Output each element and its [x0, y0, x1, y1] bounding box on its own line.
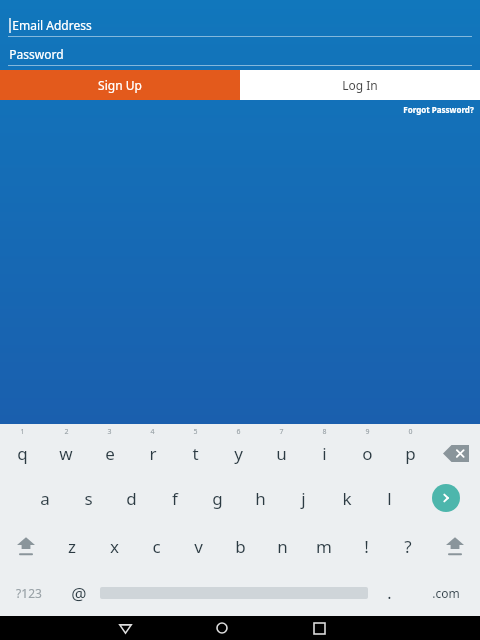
staticText: 1 — [20, 427, 25, 437]
staticText: ?123 — [16, 585, 42, 601]
staticText: u — [276, 442, 287, 465]
button[interactable]: 0 — [389, 424, 432, 474]
staticText: m — [316, 535, 332, 558]
staticText: i — [322, 442, 327, 465]
staticText: Log In — [342, 77, 378, 93]
button[interactable]: .com — [411, 570, 480, 616]
staticText: 4 — [150, 427, 155, 437]
staticText: p — [405, 442, 416, 465]
button[interactable]: f — [153, 474, 196, 522]
staticText: r — [149, 442, 157, 465]
staticText: Email Address — [12, 17, 92, 33]
staticText: 9 — [365, 427, 370, 437]
button[interactable]: 1 — [0, 424, 44, 474]
staticText: d — [126, 487, 137, 510]
button[interactable]: 2 — [44, 424, 88, 474]
button[interactable]: v — [177, 522, 219, 570]
staticText: g — [212, 487, 223, 510]
staticText: 8 — [322, 427, 327, 437]
button[interactable]: Password — [0, 43, 480, 66]
button[interactable]: c — [135, 522, 177, 570]
button[interactable]: Email Address — [0, 14, 480, 37]
button[interactable]: ?123 — [0, 570, 57, 616]
staticText: c — [152, 535, 161, 558]
button[interactable]: 7 — [260, 424, 303, 474]
button[interactable]: Forgot Password? — [0, 104, 480, 115]
button[interactable]: j — [282, 474, 325, 522]
staticText: w — [59, 442, 73, 465]
button[interactable]: Shift — [429, 522, 480, 570]
button[interactable]: m — [303, 522, 345, 570]
staticText: t — [192, 442, 199, 465]
button[interactable]: Next — [411, 474, 480, 522]
button[interactable]: Shift — [0, 522, 51, 570]
button[interactable]: h — [239, 474, 282, 522]
staticText: a — [40, 487, 50, 510]
staticText: ? — [404, 535, 412, 558]
button[interactable]: @ — [57, 570, 100, 616]
staticText: . — [387, 582, 392, 604]
button[interactable]: n — [261, 522, 303, 570]
staticText: @ — [71, 582, 87, 605]
button[interactable]: Log In — [240, 70, 480, 100]
staticText: o — [362, 442, 373, 465]
button[interactable]: ! — [345, 522, 387, 570]
button[interactable]: 3 — [88, 424, 131, 474]
staticText: y — [234, 442, 243, 465]
button[interactable]: Backspace — [432, 424, 480, 474]
button[interactable]: Space — [100, 570, 368, 616]
staticText: h — [255, 487, 266, 510]
button[interactable]: Home — [202, 616, 242, 640]
button[interactable]: s — [67, 474, 110, 522]
staticText: Sign Up — [98, 77, 142, 93]
staticText: k — [342, 487, 352, 510]
button[interactable]: Back — [105, 616, 145, 640]
staticText: 7 — [279, 427, 284, 437]
button[interactable]: 6 — [217, 424, 260, 474]
button[interactable]: Recent apps — [299, 616, 339, 640]
button[interactable]: b — [219, 522, 261, 570]
staticText: 0 — [408, 427, 413, 437]
staticText: Password — [9, 46, 64, 62]
staticText: x — [110, 535, 119, 558]
staticText: Forgot Password? — [403, 104, 474, 115]
staticText: s — [84, 487, 93, 510]
staticText: q — [17, 442, 28, 465]
button[interactable]: z — [51, 522, 93, 570]
button[interactable]: 9 — [346, 424, 389, 474]
button[interactable]: 8 — [303, 424, 346, 474]
button[interactable]: 4 — [131, 424, 174, 474]
button[interactable]: k — [325, 474, 368, 522]
staticText: n — [277, 535, 288, 558]
staticText: v — [194, 535, 203, 558]
staticText: l — [387, 487, 392, 510]
button[interactable]: ? — [387, 522, 429, 570]
staticText: ! — [364, 535, 369, 558]
button[interactable]: l — [368, 474, 411, 522]
staticText: z — [68, 535, 76, 558]
staticText: b — [235, 535, 246, 558]
button[interactable]: x — [93, 522, 135, 570]
staticText: 2 — [64, 427, 69, 437]
staticText: .com — [432, 585, 460, 601]
staticText: 5 — [193, 427, 198, 437]
button[interactable]: . — [368, 570, 411, 616]
button[interactable]: 5 — [174, 424, 217, 474]
button[interactable]: a — [23, 474, 67, 522]
button[interactable]: d — [110, 474, 153, 522]
button[interactable]: Sign Up — [0, 70, 240, 100]
staticText: e — [105, 442, 115, 465]
staticText: j — [301, 487, 306, 510]
button[interactable]: g — [196, 474, 239, 522]
staticText: f — [172, 487, 178, 510]
staticText: 3 — [107, 427, 112, 437]
staticText: 6 — [236, 427, 241, 437]
